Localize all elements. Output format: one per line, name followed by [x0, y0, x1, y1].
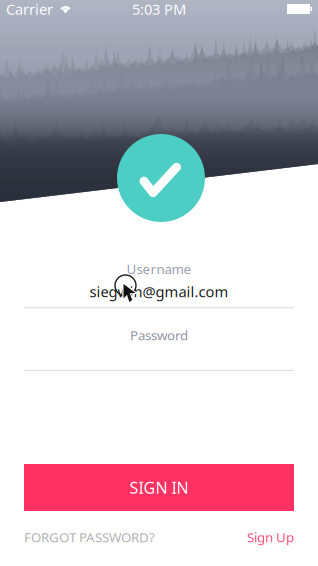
staticText: Password — [130, 326, 188, 344]
staticText: siegwin@gmail.com — [89, 282, 228, 301]
button[interactable]: SIGN IN — [24, 464, 294, 511]
staticText: 5:03 PM — [132, 0, 186, 19]
button[interactable]: FORGOT PASSWORD? — [24, 528, 174, 546]
staticText: SIGN IN — [129, 477, 188, 498]
staticText: Sign Up — [247, 528, 294, 546]
button[interactable]: Sign Up — [238, 528, 294, 546]
staticText: FORGOT PASSWORD? — [24, 528, 155, 546]
staticText: Carrier — [6, 0, 53, 19]
staticText: Username — [126, 260, 191, 278]
